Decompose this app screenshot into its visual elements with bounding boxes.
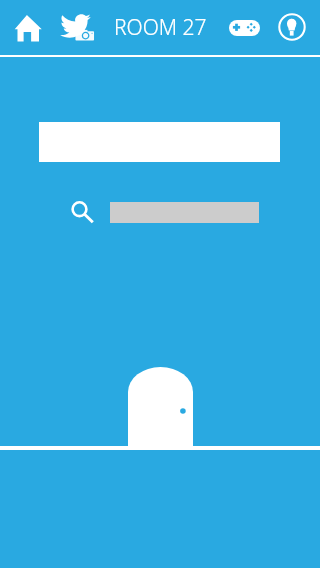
button[interactable]: Door xyxy=(128,367,193,450)
button[interactable]: Games xyxy=(227,15,262,41)
button[interactable]: Share screenshot on Twitter xyxy=(58,12,97,42)
button[interactable]: Hint xyxy=(277,12,307,42)
staticText: ROOM 27 xyxy=(114,13,207,42)
button[interactable]: Search xyxy=(71,200,97,226)
button[interactable]: Home xyxy=(12,13,42,42)
